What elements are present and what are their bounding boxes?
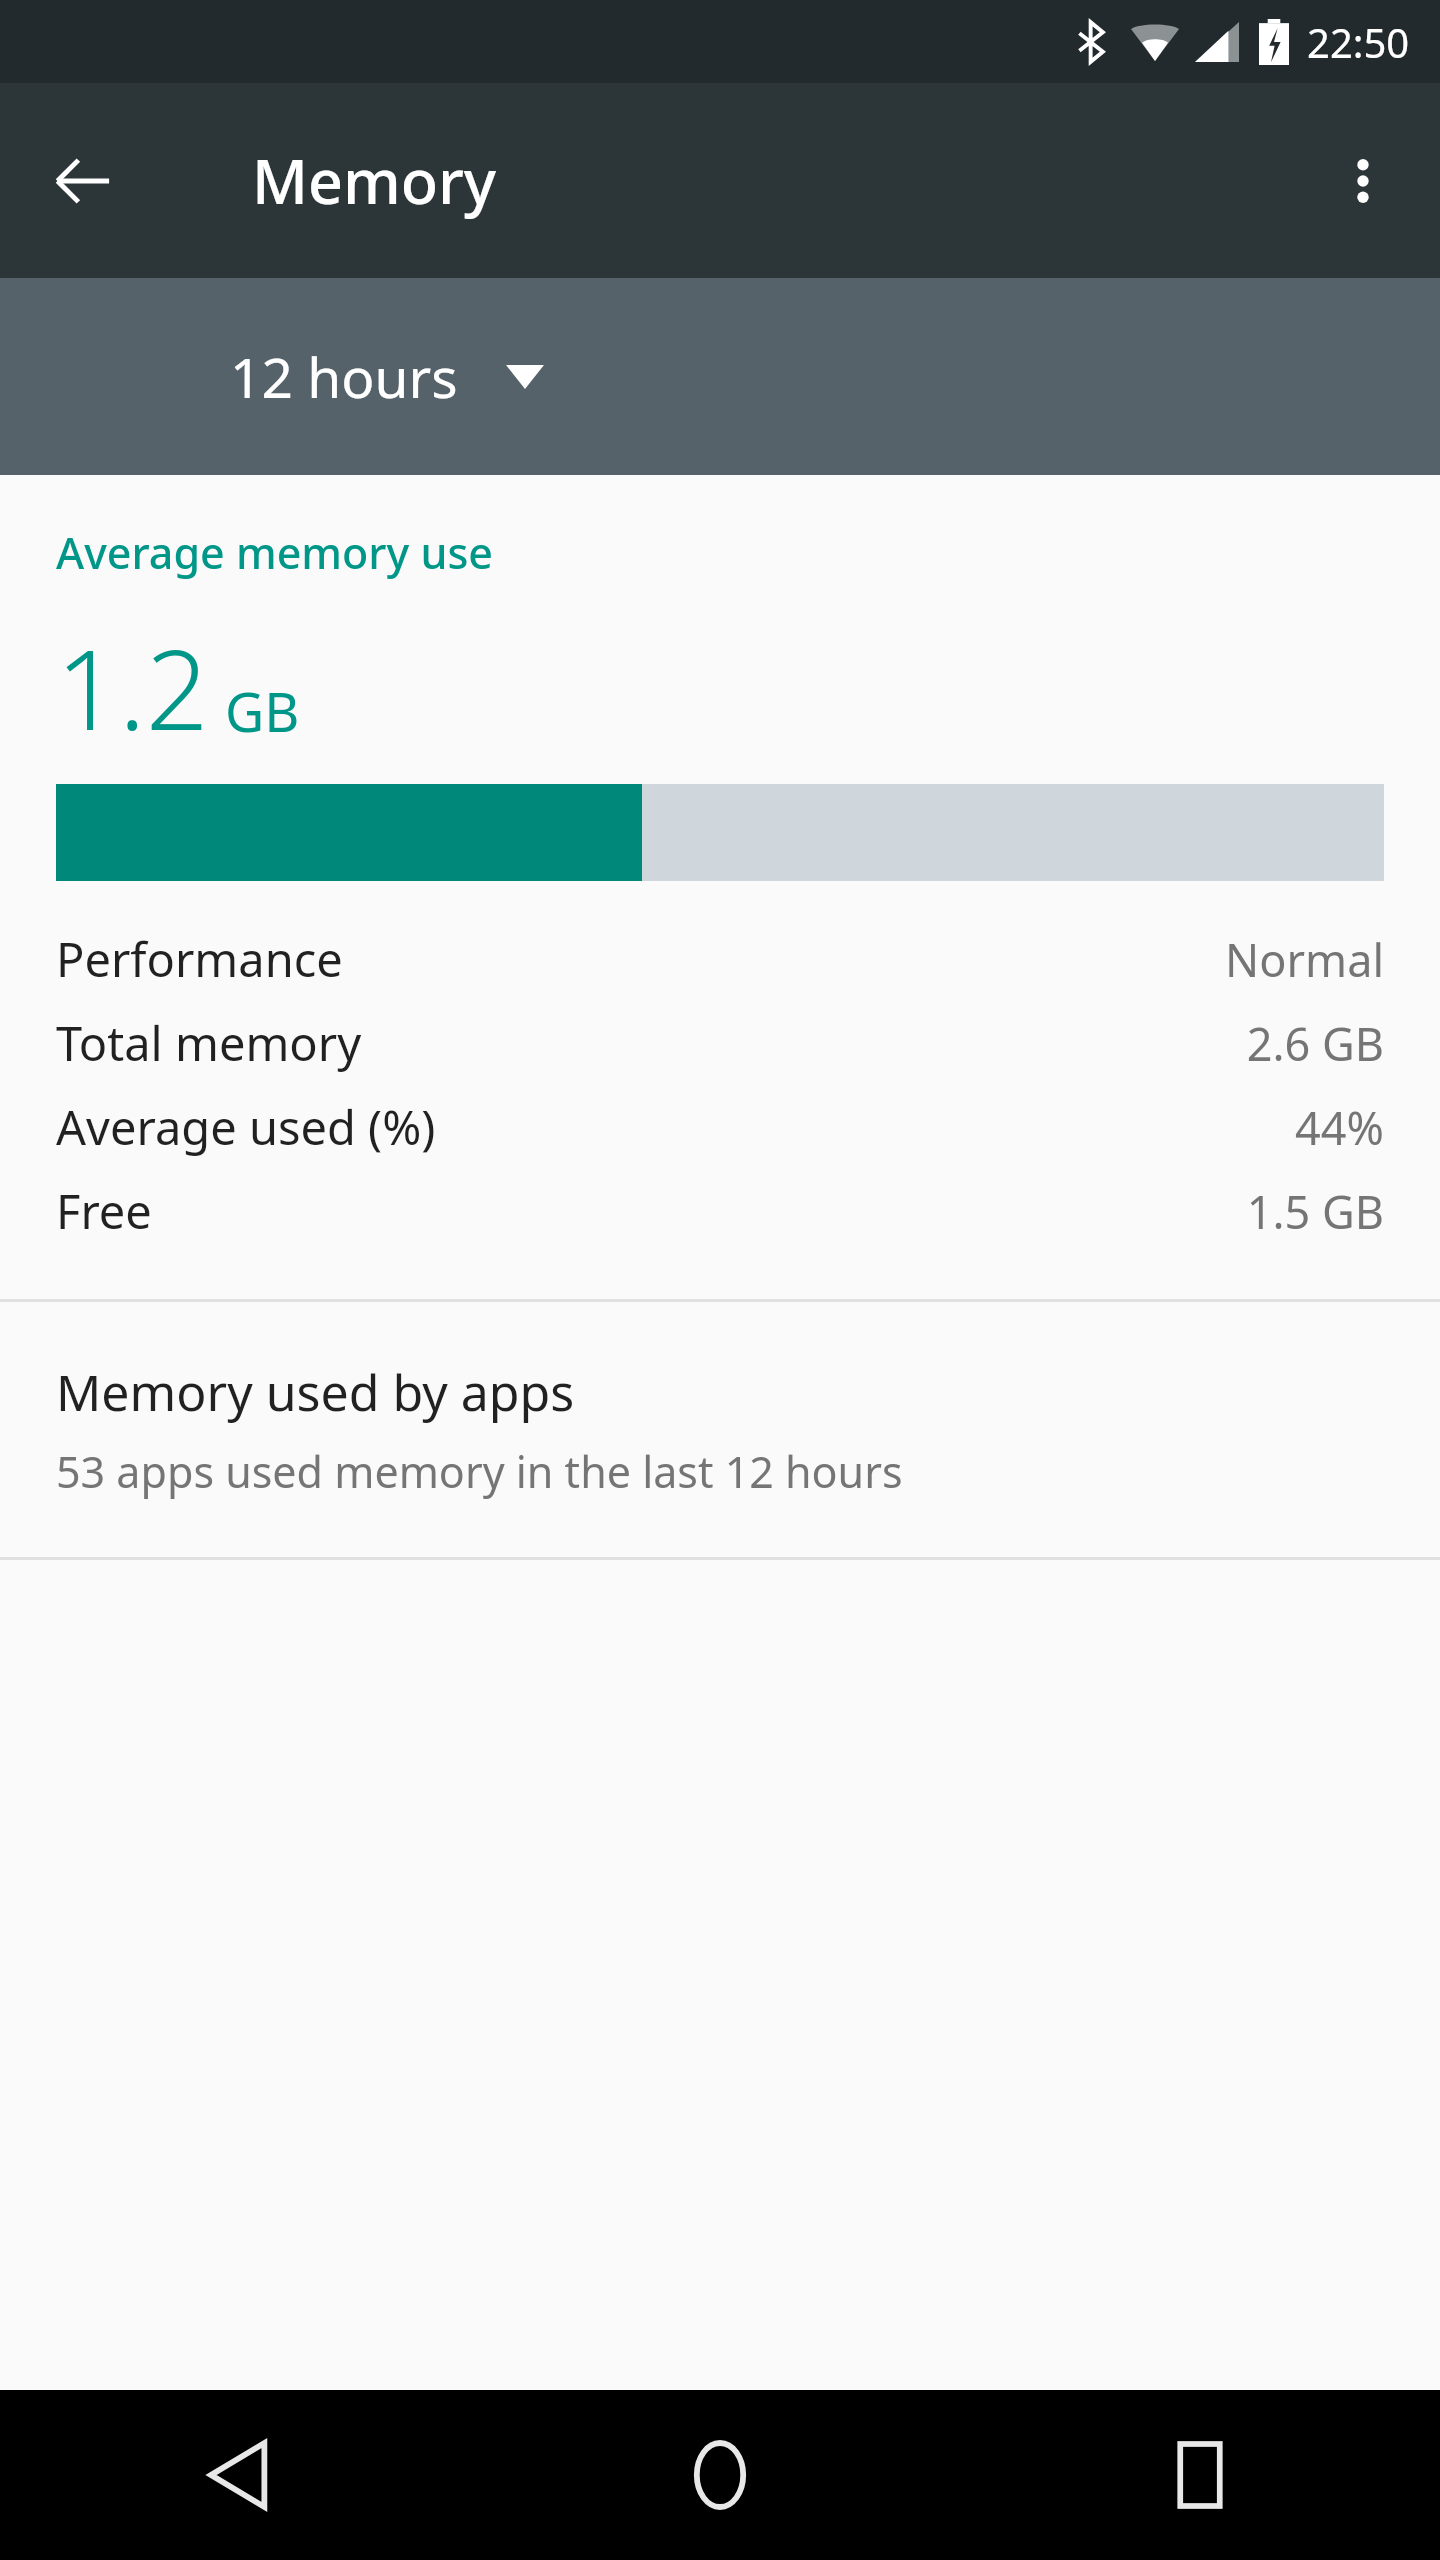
button[interactable]: Recents — [960, 2390, 1440, 2560]
staticText: 2.6 GB — [1246, 1013, 1384, 1074]
staticText: Memory used by apps — [56, 1358, 575, 1426]
button[interactable]: More options — [1308, 126, 1418, 236]
button[interactable]: Back — [28, 126, 138, 236]
button[interactable]: 12 hours — [230, 339, 564, 414]
staticText: Normal — [1225, 929, 1384, 990]
staticText: Memory — [252, 139, 497, 222]
staticText: 44% — [1295, 1097, 1384, 1158]
staticText: 12 hours — [230, 339, 458, 414]
staticText: Free — [56, 1179, 152, 1243]
staticText: 22:50 — [1307, 15, 1410, 69]
staticText: 1.2 — [56, 612, 209, 762]
staticText: 1.5 GB — [1246, 1181, 1384, 1242]
button[interactable]: Home — [480, 2390, 960, 2560]
staticText: Average memory use — [56, 523, 493, 582]
staticText: Average used (%) — [56, 1095, 436, 1159]
staticText: GB — [225, 674, 300, 748]
staticText: 53 apps used memory in the last 12 hours — [56, 1442, 903, 1501]
button[interactable]: Back — [0, 2390, 480, 2560]
staticText: Performance — [56, 927, 343, 991]
button[interactable]: Memory used by apps — [0, 1302, 1440, 1557]
staticText: Total memory — [56, 1011, 362, 1075]
